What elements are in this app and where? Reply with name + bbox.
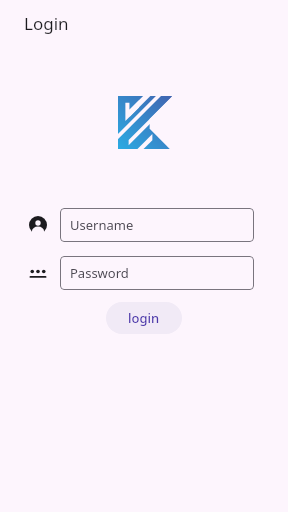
button[interactable]: Password: [60, 256, 254, 290]
staticText: Username: [70, 216, 134, 234]
other: Account: [29, 216, 47, 234]
button[interactable]: Username: [60, 208, 254, 242]
staticText: Login: [24, 12, 69, 35]
button[interactable]: login: [106, 302, 182, 334]
staticText: login: [128, 309, 160, 327]
other: Password: [29, 264, 47, 282]
staticText: Password: [70, 264, 129, 282]
